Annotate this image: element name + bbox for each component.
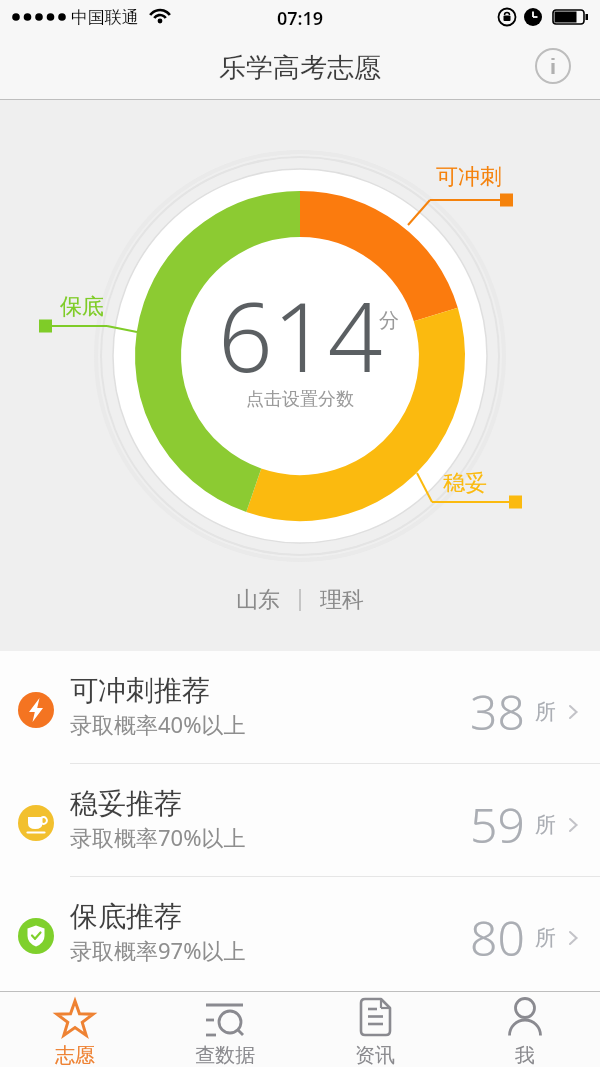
button[interactable]: 乐学高考志愿 <box>219 51 381 85</box>
button[interactable]: 稳妥推荐 <box>0 764 600 876</box>
staticText: 59 <box>470 792 525 857</box>
staticText: 所 <box>535 699 556 725</box>
staticText: 资讯 <box>355 1043 395 1067</box>
staticText: 保底推荐 <box>70 899 182 934</box>
staticText: 我 <box>515 1043 535 1067</box>
staticText: 保底 <box>60 293 104 321</box>
button[interactable]: 山东 <box>0 585 600 615</box>
staticText: 录取概率40%以上 <box>70 709 246 739</box>
staticText: 稳妥 <box>443 469 487 497</box>
staticText: 614 <box>218 269 383 400</box>
staticText: 07:19 <box>277 6 324 31</box>
staticText: 山东 <box>236 586 280 614</box>
button[interactable]: 我 <box>450 991 600 1067</box>
staticText: 可冲刺推荐 <box>70 673 210 708</box>
button[interactable]: 查数据 <box>150 991 300 1067</box>
staticText: 录取概率70%以上 <box>70 822 246 852</box>
staticText: 80 <box>470 905 525 970</box>
staticText: 查数据 <box>195 1043 255 1067</box>
button[interactable]: 保底推荐 <box>0 877 600 989</box>
button[interactable]: 可冲刺 <box>0 100 600 651</box>
staticText: 录取概率97%以上 <box>70 935 246 965</box>
staticText: 点击设置分数 <box>246 388 354 411</box>
staticText: 中国联通 <box>71 7 139 28</box>
staticText: 可冲刺 <box>436 163 502 191</box>
staticText: 理科 <box>320 586 364 614</box>
staticText: 稳妥推荐 <box>70 786 182 821</box>
button[interactable] <box>535 48 571 84</box>
button[interactable]: 志愿 <box>0 991 150 1067</box>
button[interactable]: 可冲刺推荐 <box>0 651 600 763</box>
staticText: 志愿 <box>55 1043 95 1067</box>
staticText: 所 <box>535 925 556 951</box>
staticText: 所 <box>535 812 556 838</box>
button[interactable]: 资讯 <box>300 991 450 1067</box>
staticText: 分 <box>379 308 399 333</box>
staticText: 38 <box>470 679 525 744</box>
